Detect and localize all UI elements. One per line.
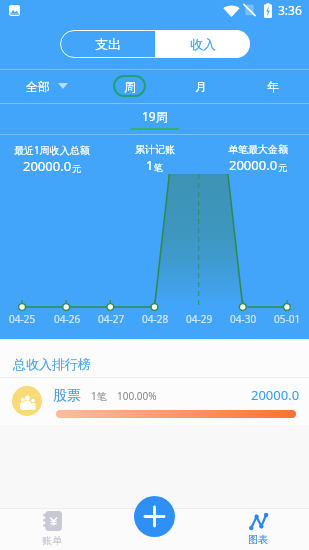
staticText: 04-30 bbox=[230, 312, 257, 326]
staticText: 20000.0 bbox=[229, 156, 278, 174]
button[interactable]: 股票 bbox=[0, 378, 309, 425]
staticText: 收入 bbox=[190, 36, 216, 52]
button[interactable]: 账单 bbox=[17, 508, 87, 550]
button[interactable]: 周 bbox=[94, 69, 165, 103]
button[interactable]: Add record bbox=[134, 496, 175, 537]
staticText: 支出 bbox=[95, 36, 121, 52]
staticText: 20000.0 bbox=[23, 157, 72, 175]
staticText: 全部 bbox=[26, 79, 50, 94]
staticText: 账单 bbox=[42, 534, 62, 547]
staticText: 总收入排行榜 bbox=[13, 356, 91, 372]
button[interactable]: 收入 bbox=[155, 30, 250, 58]
staticText: 最近1周收入总额 bbox=[14, 143, 90, 157]
staticText: 04-27 bbox=[98, 312, 125, 326]
button[interactable]: 19周 bbox=[0, 104, 309, 133]
button[interactable]: 年 bbox=[237, 69, 309, 103]
button[interactable]: 全部 bbox=[26, 69, 94, 103]
staticText: 05-01 bbox=[274, 312, 301, 326]
staticText: 累计记账 bbox=[135, 143, 175, 156]
button[interactable]: 图表 bbox=[223, 508, 293, 550]
staticText: 100.00% bbox=[117, 389, 157, 403]
staticText: 单笔最大金额 bbox=[228, 143, 288, 156]
staticText: 04-28 bbox=[142, 312, 169, 326]
button[interactable]: 支出 bbox=[60, 30, 155, 58]
staticText: 04-26 bbox=[54, 312, 81, 326]
staticText: 股票 bbox=[53, 387, 81, 405]
staticText: 月 bbox=[195, 79, 207, 94]
staticText: 04-25 bbox=[9, 312, 36, 326]
staticText: 20000.0 bbox=[251, 386, 300, 404]
staticText: 1笔 bbox=[91, 389, 107, 403]
staticText: 04-29 bbox=[186, 312, 213, 326]
staticText: 周 bbox=[124, 79, 136, 94]
staticText: 图表 bbox=[248, 533, 268, 546]
staticText: 笔 bbox=[154, 162, 163, 173]
staticText: 元 bbox=[278, 162, 287, 173]
button[interactable]: 月 bbox=[165, 69, 237, 103]
staticText: 19周 bbox=[142, 108, 168, 124]
staticText: 1 bbox=[146, 156, 154, 174]
staticText: 元 bbox=[72, 163, 81, 174]
staticText: 年 bbox=[267, 79, 279, 94]
staticText: 3:36 bbox=[278, 2, 302, 18]
